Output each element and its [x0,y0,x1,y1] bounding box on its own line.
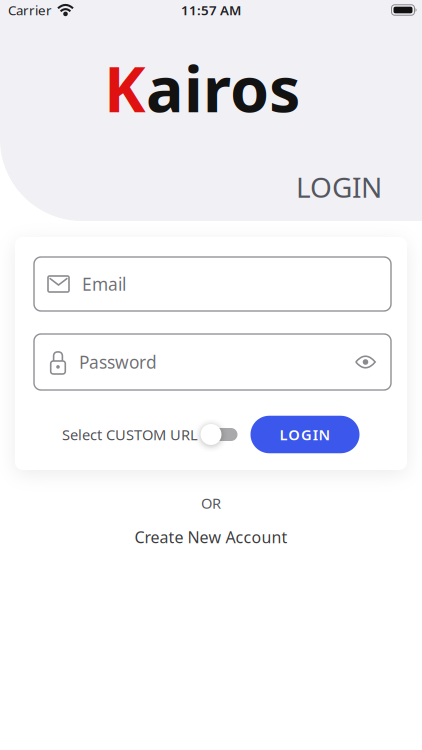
staticText: Create New Account [134,526,287,548]
staticText: Select CUSTOM URL [62,425,198,444]
button[interactable]: Email [34,257,391,311]
button[interactable]: Select CUSTOM URL [200,423,237,445]
staticText: Email [82,272,126,295]
staticText: K [104,46,146,130]
button[interactable]: Show password [355,354,376,370]
staticText: Password [79,350,157,373]
staticText: Carrier [8,1,52,19]
button[interactable]: Password [34,334,391,390]
staticText: 11:57 AM [181,1,241,19]
staticText: LOGIN [296,168,382,206]
button[interactable]: Create New Account [134,526,287,548]
staticText: OR [201,493,221,513]
staticText: LOGIN [279,425,331,444]
staticText: airos [146,46,300,130]
button[interactable]: LOGIN [250,416,359,453]
